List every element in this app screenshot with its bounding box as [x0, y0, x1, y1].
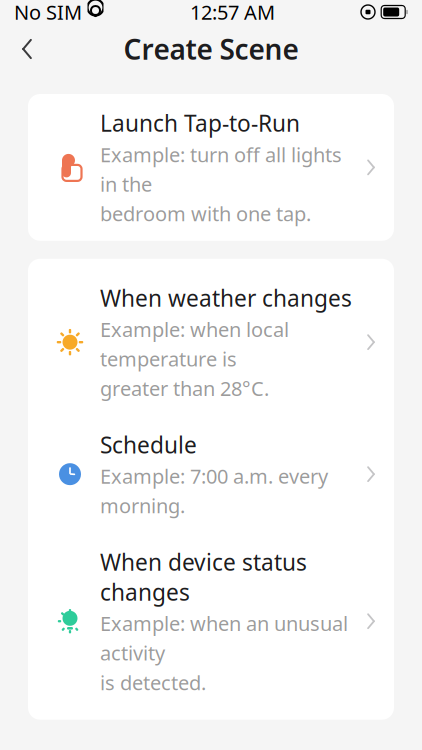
- staticText: When device status changes: [100, 547, 307, 607]
- staticText: Example: when local temperature is great…: [100, 316, 289, 402]
- button[interactable]: Schedule: [28, 416, 394, 533]
- button[interactable]: Back: [0, 26, 52, 72]
- staticText: When weather changes: [100, 283, 352, 313]
- staticText: Example: 7:00 a.m. every morning.: [100, 463, 328, 519]
- button[interactable]: Launch Tap-to-Run: [28, 94, 394, 241]
- staticText: Launch Tap-to-Run: [100, 108, 300, 138]
- button[interactable]: When device status changes: [28, 533, 394, 710]
- staticText: Example: turn off all lights in the bedr…: [100, 141, 342, 227]
- staticText: 12:57 AM: [190, 0, 275, 25]
- staticText: Create Scene: [123, 30, 298, 68]
- staticText: Schedule: [100, 430, 197, 460]
- staticText: No SIM: [14, 0, 82, 25]
- button[interactable]: When weather changes: [28, 269, 394, 416]
- staticText: Example: when an unusual activity is det…: [100, 610, 348, 696]
